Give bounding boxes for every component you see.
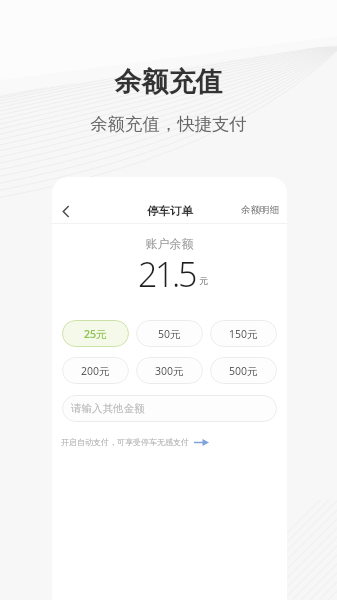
button[interactable]: 300元 [136,357,203,384]
staticText: 余额充值，快捷支付 [0,113,337,135]
staticText: 21.5 [138,251,195,297]
staticText: 开启自动支付，可享受停车无感支付 [61,437,189,447]
staticText: 停车订单 [147,204,193,218]
button[interactable]: 200元 [62,357,129,384]
staticText: 150元 [229,327,258,341]
button[interactable]: 50元 [136,320,203,347]
staticText: 账户余额 [52,236,287,251]
button[interactable]: 150元 [210,320,277,347]
button[interactable]: 500元 [210,357,277,384]
button[interactable]: 返回 [56,201,77,222]
staticText: 200元 [81,364,110,378]
button[interactable]: 余额明细 [233,200,287,220]
staticText: 余额充值 [0,65,337,99]
staticText: 25元 [84,327,107,341]
staticText: 余额明细 [241,204,279,216]
staticText: 50元 [158,327,181,341]
staticText: 500元 [229,364,258,378]
staticText: 请输入其他金额 [71,402,145,415]
button[interactable]: 开启自动支付，可享受停车无感支付 [61,437,209,447]
staticText: 元 [199,275,208,286]
staticText: 300元 [155,364,184,378]
button[interactable]: 25元 [62,320,129,347]
button[interactable]: 请输入其他金额 [62,395,277,422]
